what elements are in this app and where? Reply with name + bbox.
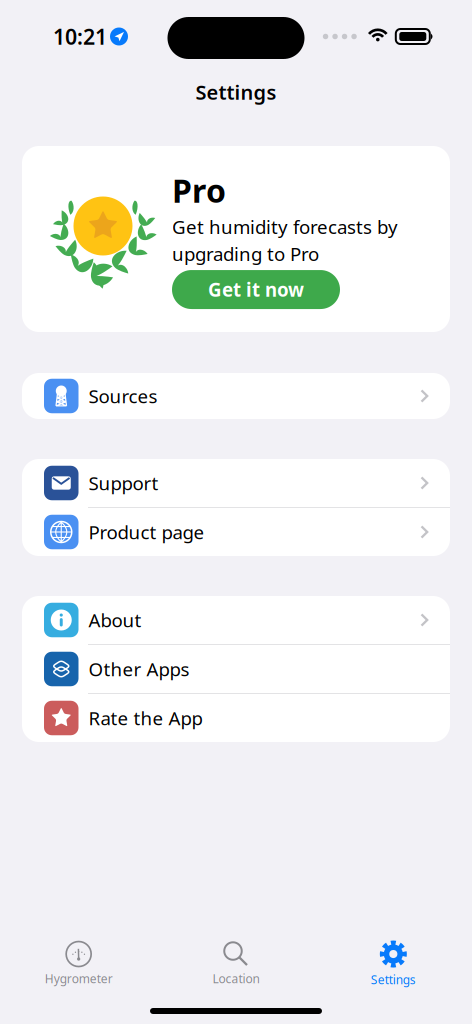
staticText: Settings — [371, 971, 416, 987]
staticText: Product page — [88, 520, 204, 544]
staticText: Support — [88, 471, 158, 495]
button[interactable]: Location — [157, 938, 315, 990]
staticText: Sources — [88, 384, 157, 408]
button[interactable]: Settings — [315, 938, 472, 990]
button[interactable]: About — [22, 596, 450, 644]
staticText: Other Apps — [88, 657, 189, 681]
button[interactable]: Support — [22, 459, 450, 507]
staticText: 10:21 — [53, 22, 107, 51]
button[interactable]: Rate the App — [22, 694, 450, 742]
staticText: Rate the App — [88, 706, 202, 730]
staticText: About — [88, 608, 141, 632]
button[interactable]: Sources — [22, 373, 450, 419]
staticText: Pro — [172, 169, 226, 211]
staticText: Hygrometer — [45, 970, 113, 986]
button[interactable]: Other Apps — [22, 645, 450, 693]
staticText: Settings — [195, 79, 276, 105]
staticText: Location — [212, 970, 259, 986]
staticText: Get humidity forecasts by — [172, 214, 398, 239]
button[interactable]: Get it now — [172, 270, 340, 309]
staticText: upgrading to Pro — [172, 241, 319, 266]
button[interactable]: Hygrometer — [0, 938, 157, 990]
staticText: Get it now — [208, 277, 304, 302]
button[interactable]: Product page — [22, 508, 450, 556]
